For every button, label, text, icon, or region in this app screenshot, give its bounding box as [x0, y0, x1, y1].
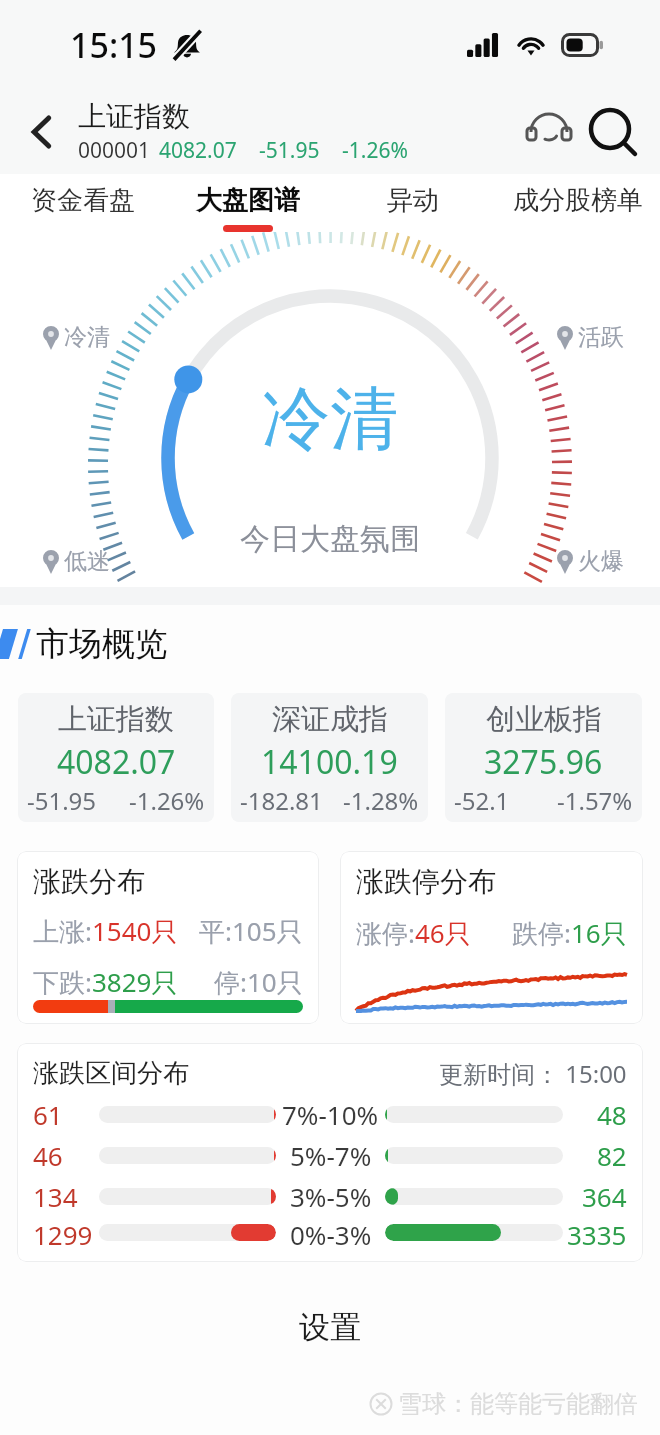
staticText: -51.95 [259, 136, 320, 165]
staticText: 涨跌分布 [33, 864, 145, 899]
staticText: 上证指数 [78, 99, 190, 134]
staticText: 涨停: [356, 915, 415, 951]
staticText: 成分股榜单 [513, 184, 643, 217]
button[interactable]: 创业板指 [445, 693, 642, 822]
staticText: 火爆 [578, 547, 624, 576]
staticText: 更新时间： 15:00 [439, 1057, 627, 1090]
button[interactable]: Customer service [522, 105, 576, 159]
staticText: 10只 [247, 964, 303, 1000]
staticText: 4082.07 [159, 136, 237, 165]
staticText: 61 [33, 1097, 63, 1132]
staticText: 市场概览 [36, 623, 168, 665]
staticText: 冷清 [64, 323, 110, 352]
staticText: -1.26% [342, 136, 408, 165]
button[interactable]: 资金看盘 [0, 174, 165, 232]
staticText: 1299 [33, 1217, 93, 1248]
button[interactable]: 异动 [330, 174, 495, 232]
button[interactable]: Search [586, 105, 640, 159]
staticText: 0%-3% [290, 1217, 372, 1248]
button[interactable]: 上证指数 [18, 693, 214, 822]
staticText: 4082.07 [57, 740, 176, 784]
staticText: 平: [199, 913, 232, 949]
button[interactable]: 设置 [0, 1281, 660, 1373]
staticText: 3%-5% [290, 1179, 372, 1214]
button[interactable]: 成分股榜单 [495, 174, 660, 232]
button[interactable]: 涨跌区间分布 [17, 1043, 643, 1262]
staticText: 冷清 [262, 377, 398, 463]
button[interactable]: 深证成指 [231, 693, 428, 822]
staticText: 涨跌停分布 [356, 864, 496, 899]
staticText: 3829只 [92, 964, 178, 1000]
staticText: 16只 [571, 915, 627, 951]
staticText: 364 [582, 1179, 627, 1214]
staticText: 82 [597, 1138, 627, 1173]
staticText: 今日大盘氛围 [240, 520, 420, 558]
staticText: 大盘图谱 [196, 184, 300, 217]
staticText: -51.95 [27, 784, 97, 816]
staticText: 活跃 [578, 323, 624, 352]
staticText: 跌停: [512, 915, 571, 951]
button[interactable]: Back [14, 104, 70, 160]
staticText: 46只 [415, 915, 471, 951]
staticText: 15:15 [70, 22, 158, 68]
staticText: -182.81 [240, 784, 323, 816]
staticText: 上证指数 [58, 701, 174, 738]
button[interactable]: 大盘图谱 [165, 174, 330, 232]
staticText: 105只 [232, 913, 303, 949]
staticText: -1.28% [343, 784, 419, 816]
staticText: 雪球：能等能亏能翻倍 [398, 1389, 638, 1419]
staticText: 1540只 [92, 913, 178, 949]
staticText: 000001 [78, 136, 151, 165]
staticText: 设置 [299, 1308, 361, 1347]
staticText: 134 [33, 1179, 78, 1214]
staticText: 46 [33, 1138, 63, 1173]
button[interactable]: 涨跌分布 [17, 851, 319, 1024]
staticText: 3275.96 [484, 740, 603, 784]
staticText: 14100.19 [261, 740, 398, 784]
staticText: -1.26% [129, 784, 205, 816]
staticText: -1.57% [557, 784, 633, 816]
staticText: 上涨: [33, 913, 92, 949]
staticText: 创业板指 [486, 701, 602, 738]
staticText: 深证成指 [272, 701, 388, 738]
staticText: 涨跌区间分布 [33, 1057, 189, 1090]
button[interactable]: 涨跌停分布 [340, 851, 643, 1024]
staticText: 低迷 [64, 547, 110, 576]
staticText: 7%-10% [282, 1097, 379, 1132]
staticText: -52.1 [454, 784, 510, 816]
staticText: 异动 [387, 184, 439, 217]
staticText: 停: [214, 964, 247, 1000]
staticText: 48 [597, 1097, 627, 1132]
staticText: 资金看盘 [31, 184, 135, 217]
staticText: 5%-7% [290, 1138, 372, 1173]
staticText: 下跌: [33, 964, 92, 1000]
staticText: 3335 [567, 1217, 627, 1248]
